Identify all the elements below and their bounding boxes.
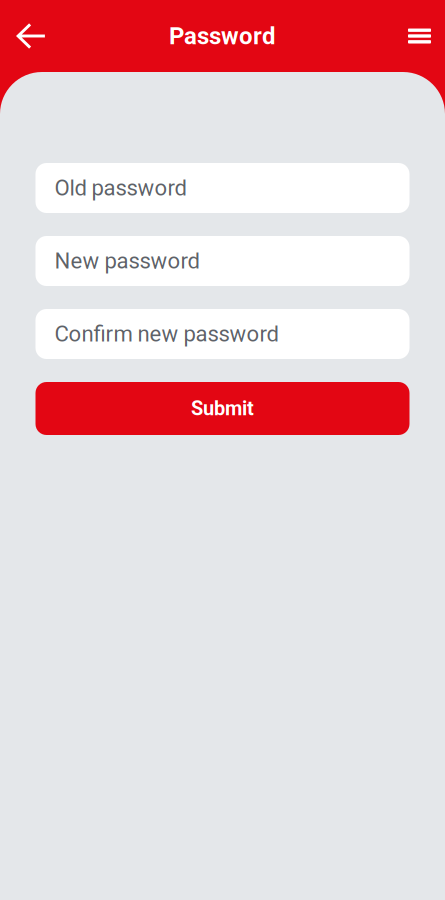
button[interactable]: Menu (394, 8, 445, 64)
button[interactable]: Confirm new password (35, 309, 409, 359)
staticText: Old password (54, 175, 186, 201)
button[interactable]: Submit (35, 382, 409, 435)
staticText: Confirm new password (54, 321, 278, 347)
button[interactable]: New password (35, 236, 409, 286)
staticText: Password (169, 22, 276, 50)
button[interactable]: Back (0, 8, 63, 64)
staticText: Submit (191, 397, 254, 420)
staticText: New password (54, 248, 199, 274)
button[interactable]: Old password (35, 163, 409, 213)
